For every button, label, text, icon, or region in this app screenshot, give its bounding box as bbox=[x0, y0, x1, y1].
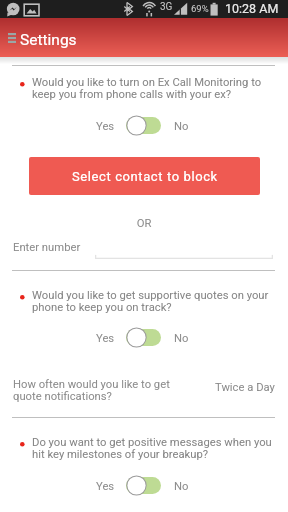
button[interactable]: Twice a Day bbox=[215, 381, 275, 394]
staticText: OR bbox=[0, 217, 288, 230]
button[interactable]: Toggle setting bbox=[126, 114, 161, 136]
staticText: Enter number bbox=[13, 241, 81, 254]
button[interactable]: Enter number bbox=[95, 251, 273, 259]
button[interactable]: Open navigation drawer bbox=[1, 18, 23, 57]
staticText: No bbox=[174, 120, 189, 133]
staticText: Yes bbox=[96, 120, 115, 133]
button[interactable]: Toggle setting bbox=[126, 474, 161, 496]
staticText: No bbox=[174, 480, 189, 493]
staticText: How often would you like to get quote no… bbox=[13, 378, 183, 403]
staticText: Settings bbox=[20, 31, 77, 49]
button[interactable]: Select contact to block bbox=[29, 157, 260, 195]
staticText: 69% bbox=[191, 3, 209, 14]
staticText: Select contact to block bbox=[72, 169, 218, 184]
button[interactable]: Toggle setting bbox=[126, 326, 161, 348]
staticText: Twice a Day bbox=[215, 381, 275, 394]
staticText: Would you like to get supportive quotes … bbox=[32, 289, 275, 314]
staticText: Would you like to turn on Ex Call Monito… bbox=[32, 76, 275, 101]
staticText: 3G bbox=[160, 1, 173, 13]
staticText: 10:28 AM bbox=[225, 1, 279, 16]
staticText: Yes bbox=[96, 480, 115, 493]
staticText: Yes bbox=[96, 332, 115, 345]
staticText: Do you want to get positive messages whe… bbox=[32, 436, 275, 461]
staticText: No bbox=[174, 332, 189, 345]
